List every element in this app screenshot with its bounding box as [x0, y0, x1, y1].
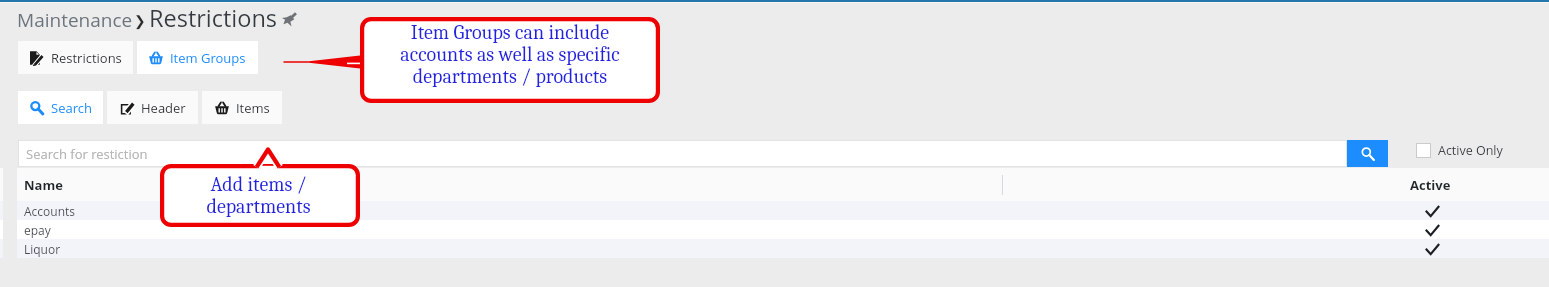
- button[interactable]: Active Only: [1416, 142, 1503, 159]
- staticText: Items: [236, 99, 270, 117]
- button[interactable]: Header: [107, 91, 198, 124]
- button[interactable]: Items: [202, 91, 282, 124]
- button[interactable]: Accounts: [17, 201, 1549, 220]
- button[interactable]: Search for restiction: [18, 140, 1347, 167]
- button[interactable]: Restrictions: [18, 41, 133, 74]
- staticText: Add items / departments: [206, 174, 311, 218]
- staticText: Search: [51, 99, 92, 117]
- staticText: epay: [24, 222, 51, 238]
- other: Pin page: [282, 13, 296, 27]
- staticText: Header: [141, 99, 186, 117]
- button[interactable]: Item Groups: [137, 41, 258, 74]
- button[interactable]: Search: [1347, 140, 1388, 167]
- staticText: Item Groups: [170, 49, 246, 67]
- staticText: Restrictions: [51, 49, 122, 67]
- staticText: Restrictions: [149, 2, 278, 34]
- button[interactable]: Search: [18, 91, 103, 124]
- staticText: Maintenance: [17, 7, 133, 33]
- staticText: Search for restiction: [26, 145, 148, 163]
- staticText: ❯: [134, 13, 146, 29]
- staticText: Liquor: [24, 241, 61, 257]
- staticText: Active: [1410, 176, 1451, 194]
- staticText: Name: [24, 176, 63, 194]
- button[interactable]: Liquor: [17, 239, 1549, 258]
- staticText: Accounts: [24, 203, 75, 219]
- button[interactable]: epay: [17, 220, 1549, 239]
- staticText: Active Only: [1438, 142, 1503, 159]
- staticText: Item Groups can include accounts as well…: [400, 22, 620, 88]
